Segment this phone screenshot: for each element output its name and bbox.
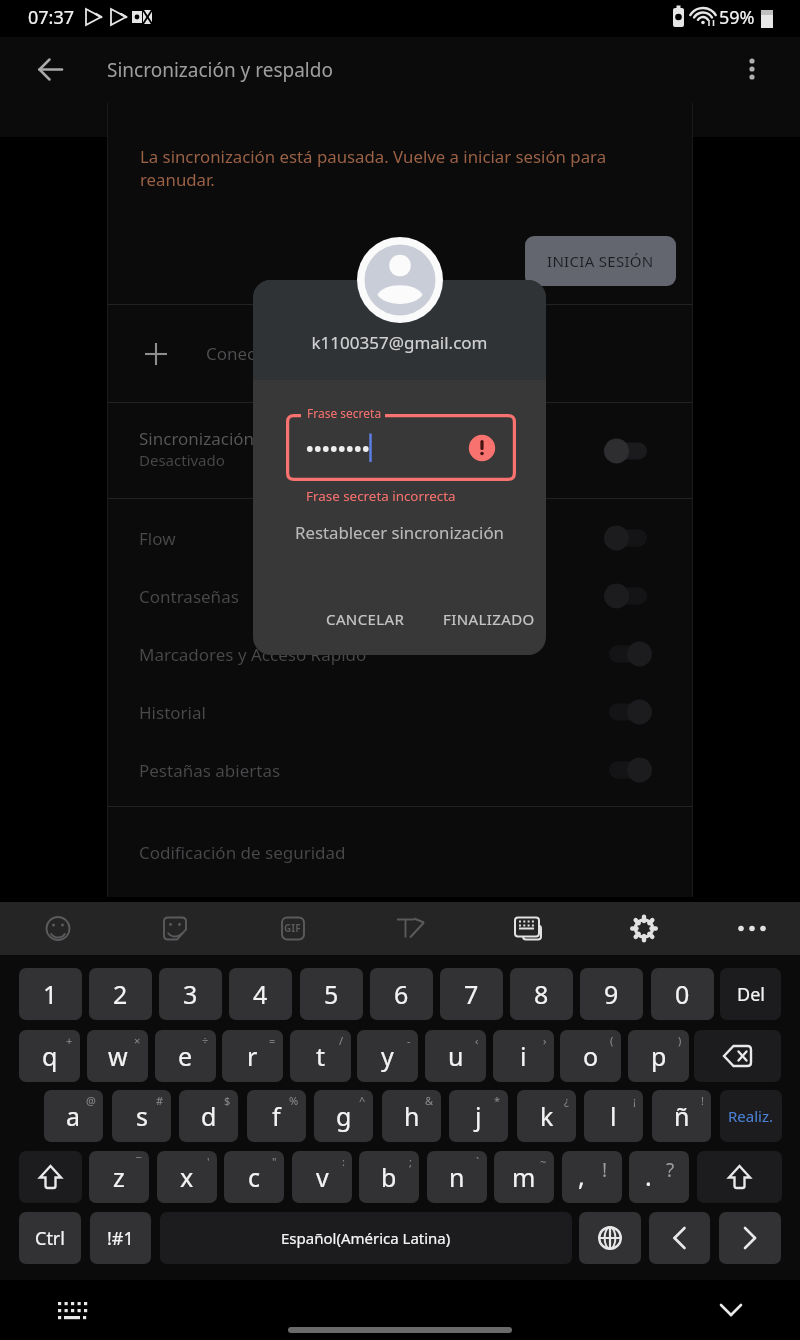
button[interactable]: Codificación de seguridad [107, 807, 693, 897]
button[interactable]: s [112, 1090, 171, 1142]
button[interactable]: 2 [89, 968, 152, 1020]
staticText: FINALIZADO [443, 609, 535, 629]
button[interactable]: q [19, 1030, 80, 1082]
button[interactable]: w [87, 1030, 148, 1082]
button[interactable]: 9 [580, 968, 643, 1020]
button[interactable]: 3 [159, 968, 222, 1020]
staticText: g [336, 1099, 352, 1133]
staticText: Desactivado [139, 450, 225, 470]
button[interactable]: Historial [107, 683, 693, 741]
button[interactable]: 0 [651, 968, 714, 1020]
button[interactable]: 4 [229, 968, 292, 1020]
staticText: Pestañas abiertas [139, 759, 281, 782]
button[interactable]: Español(América Latina) [160, 1212, 572, 1264]
button[interactable]: y [357, 1030, 418, 1082]
staticText: ^ [359, 1093, 366, 1108]
button[interactable]: j [449, 1090, 508, 1142]
staticText: o [583, 1039, 599, 1073]
button[interactable]: Realiz. [720, 1090, 782, 1142]
button[interactable]: Collapse [707, 1286, 755, 1334]
button[interactable]: p [628, 1030, 689, 1082]
button[interactable]: INICIA SESIÓN [525, 236, 676, 286]
button[interactable]: Ctrl [19, 1212, 81, 1264]
button[interactable]: Back [26, 45, 74, 93]
staticText: › [543, 1033, 547, 1048]
button[interactable]: Del [720, 968, 781, 1020]
button[interactable]: l [584, 1090, 643, 1142]
button[interactable]: 8 [510, 968, 573, 1020]
button[interactable]: e [155, 1030, 216, 1082]
button[interactable]: 5 [300, 968, 363, 1020]
staticText: $ [224, 1093, 231, 1108]
staticText: Del [737, 982, 765, 1007]
staticText: ‹ [475, 1033, 479, 1048]
button[interactable]: 6 [370, 968, 433, 1020]
button[interactable]: k [517, 1090, 576, 1142]
button[interactable]: a [44, 1090, 103, 1142]
button[interactable]: , [562, 1151, 622, 1203]
button[interactable]: h [382, 1090, 441, 1142]
staticText: ! [602, 1157, 608, 1183]
staticText: ¯ [136, 1154, 142, 1169]
button[interactable]: Pestañas abiertas [107, 741, 693, 799]
button[interactable] [694, 1030, 781, 1082]
button[interactable]: 1 [19, 968, 82, 1020]
button[interactable]: f [247, 1090, 306, 1142]
button[interactable]: o [560, 1030, 621, 1082]
staticText: 9 [604, 977, 619, 1011]
button[interactable]: Marcadores y Acceso Rápido [107, 625, 693, 683]
button[interactable]: g [314, 1090, 373, 1142]
staticText: m [512, 1160, 536, 1194]
staticText: q [42, 1039, 58, 1073]
button[interactable]: Restablecer sincronización [253, 515, 546, 549]
button[interactable]: . [629, 1151, 689, 1203]
button[interactable]: CANCELAR [310, 601, 421, 637]
button[interactable] [719, 1212, 781, 1264]
staticText: 0 [675, 977, 690, 1011]
staticText: 6 [394, 977, 409, 1011]
staticText: & [425, 1093, 434, 1108]
button[interactable]: r [222, 1030, 283, 1082]
button[interactable]: n [427, 1151, 487, 1203]
staticText: x [180, 1160, 194, 1194]
button[interactable]: Sincronización [107, 403, 693, 498]
staticText: c [248, 1160, 261, 1194]
button[interactable]: u [425, 1030, 486, 1082]
button[interactable] [579, 1212, 641, 1264]
button[interactable]: m [494, 1151, 554, 1203]
staticText: r [247, 1039, 258, 1073]
staticText: ` [476, 1154, 480, 1169]
button[interactable]: v [292, 1151, 352, 1203]
button[interactable]: !#1 [90, 1212, 151, 1264]
button[interactable] [697, 1151, 782, 1203]
button[interactable] [19, 1151, 82, 1203]
button[interactable]: More options [728, 45, 776, 93]
staticText: + [66, 1033, 73, 1048]
staticText: / [339, 1033, 344, 1048]
staticText: j [475, 1099, 482, 1133]
staticText: Restablecer sincronización [295, 521, 504, 544]
button[interactable]: Flow [107, 509, 693, 567]
button[interactable]: c [224, 1151, 284, 1203]
button[interactable]: 7 [440, 968, 503, 1020]
button[interactable]: z [89, 1151, 149, 1203]
staticText: 4 [253, 977, 268, 1011]
button[interactable]: Contraseñas [107, 567, 693, 625]
staticText: v [316, 1160, 329, 1194]
staticText: * [494, 1093, 501, 1108]
button[interactable]: Frase secreta [286, 414, 516, 481]
staticText: ÷ [202, 1033, 209, 1048]
button[interactable]: Hide keyboard [46, 1286, 94, 1334]
button[interactable]: x [157, 1151, 217, 1203]
button[interactable]: b [359, 1151, 419, 1203]
button[interactable]: i [493, 1030, 554, 1082]
button[interactable] [649, 1212, 710, 1264]
button[interactable]: FINALIZADO [427, 601, 546, 637]
button[interactable]: Conectar otra cuenta [107, 305, 693, 402]
staticText: y [381, 1039, 394, 1073]
staticText: Historial [139, 701, 206, 724]
button[interactable]: t [290, 1030, 351, 1082]
button[interactable]: d [179, 1090, 238, 1142]
staticText: f [272, 1099, 281, 1133]
button[interactable]: ñ [652, 1090, 711, 1142]
